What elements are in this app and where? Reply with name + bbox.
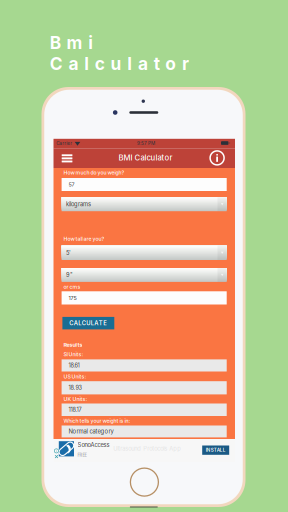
staticText: 9:57 PM [137, 140, 155, 146]
staticText: kilograms [66, 201, 91, 208]
button[interactable]: CALCULATE [62, 317, 114, 329]
staticText: SonoAccess [78, 441, 110, 448]
staticText: Ultrasound Protocols App [113, 445, 181, 452]
staticText: BMI Calculator [118, 153, 172, 162]
staticText: INSTALL [206, 447, 226, 453]
button[interactable]: Home [130, 468, 158, 496]
staticText: Bmi Calculator [50, 32, 248, 53]
button[interactable]: Information [208, 148, 227, 167]
staticText: 175 [68, 295, 76, 301]
staticText: i [56, 449, 57, 453]
button[interactable]: kilograms [62, 197, 227, 211]
staticText: 5' [66, 249, 71, 256]
staticText: Results [63, 342, 82, 348]
staticText: FREE [78, 453, 87, 458]
staticText: Normal category [68, 428, 113, 435]
button[interactable]: 9" [62, 268, 227, 282]
staticText: SI Units: [63, 351, 83, 357]
staticText: How tall are you? [63, 236, 104, 242]
staticText: 9" [66, 271, 73, 278]
staticText: US Units: [63, 374, 86, 380]
staticText: Which tells your weight is in: [63, 418, 130, 424]
staticText: 57 [68, 181, 74, 188]
staticText: CALCULATE [69, 320, 107, 327]
button[interactable]: Menu [55, 149, 79, 168]
staticText: 18.61 [68, 362, 79, 369]
button[interactable]: 5' [62, 246, 227, 260]
staticText: Carrier [56, 140, 72, 146]
staticText: 18.93 [68, 384, 81, 391]
staticText: or cms [63, 284, 80, 290]
staticText: How much do you weigh? [63, 169, 124, 176]
staticText: UK Units: [63, 396, 87, 402]
button[interactable]: INSTALL [202, 445, 229, 455]
staticText: 118.17 [68, 406, 81, 413]
